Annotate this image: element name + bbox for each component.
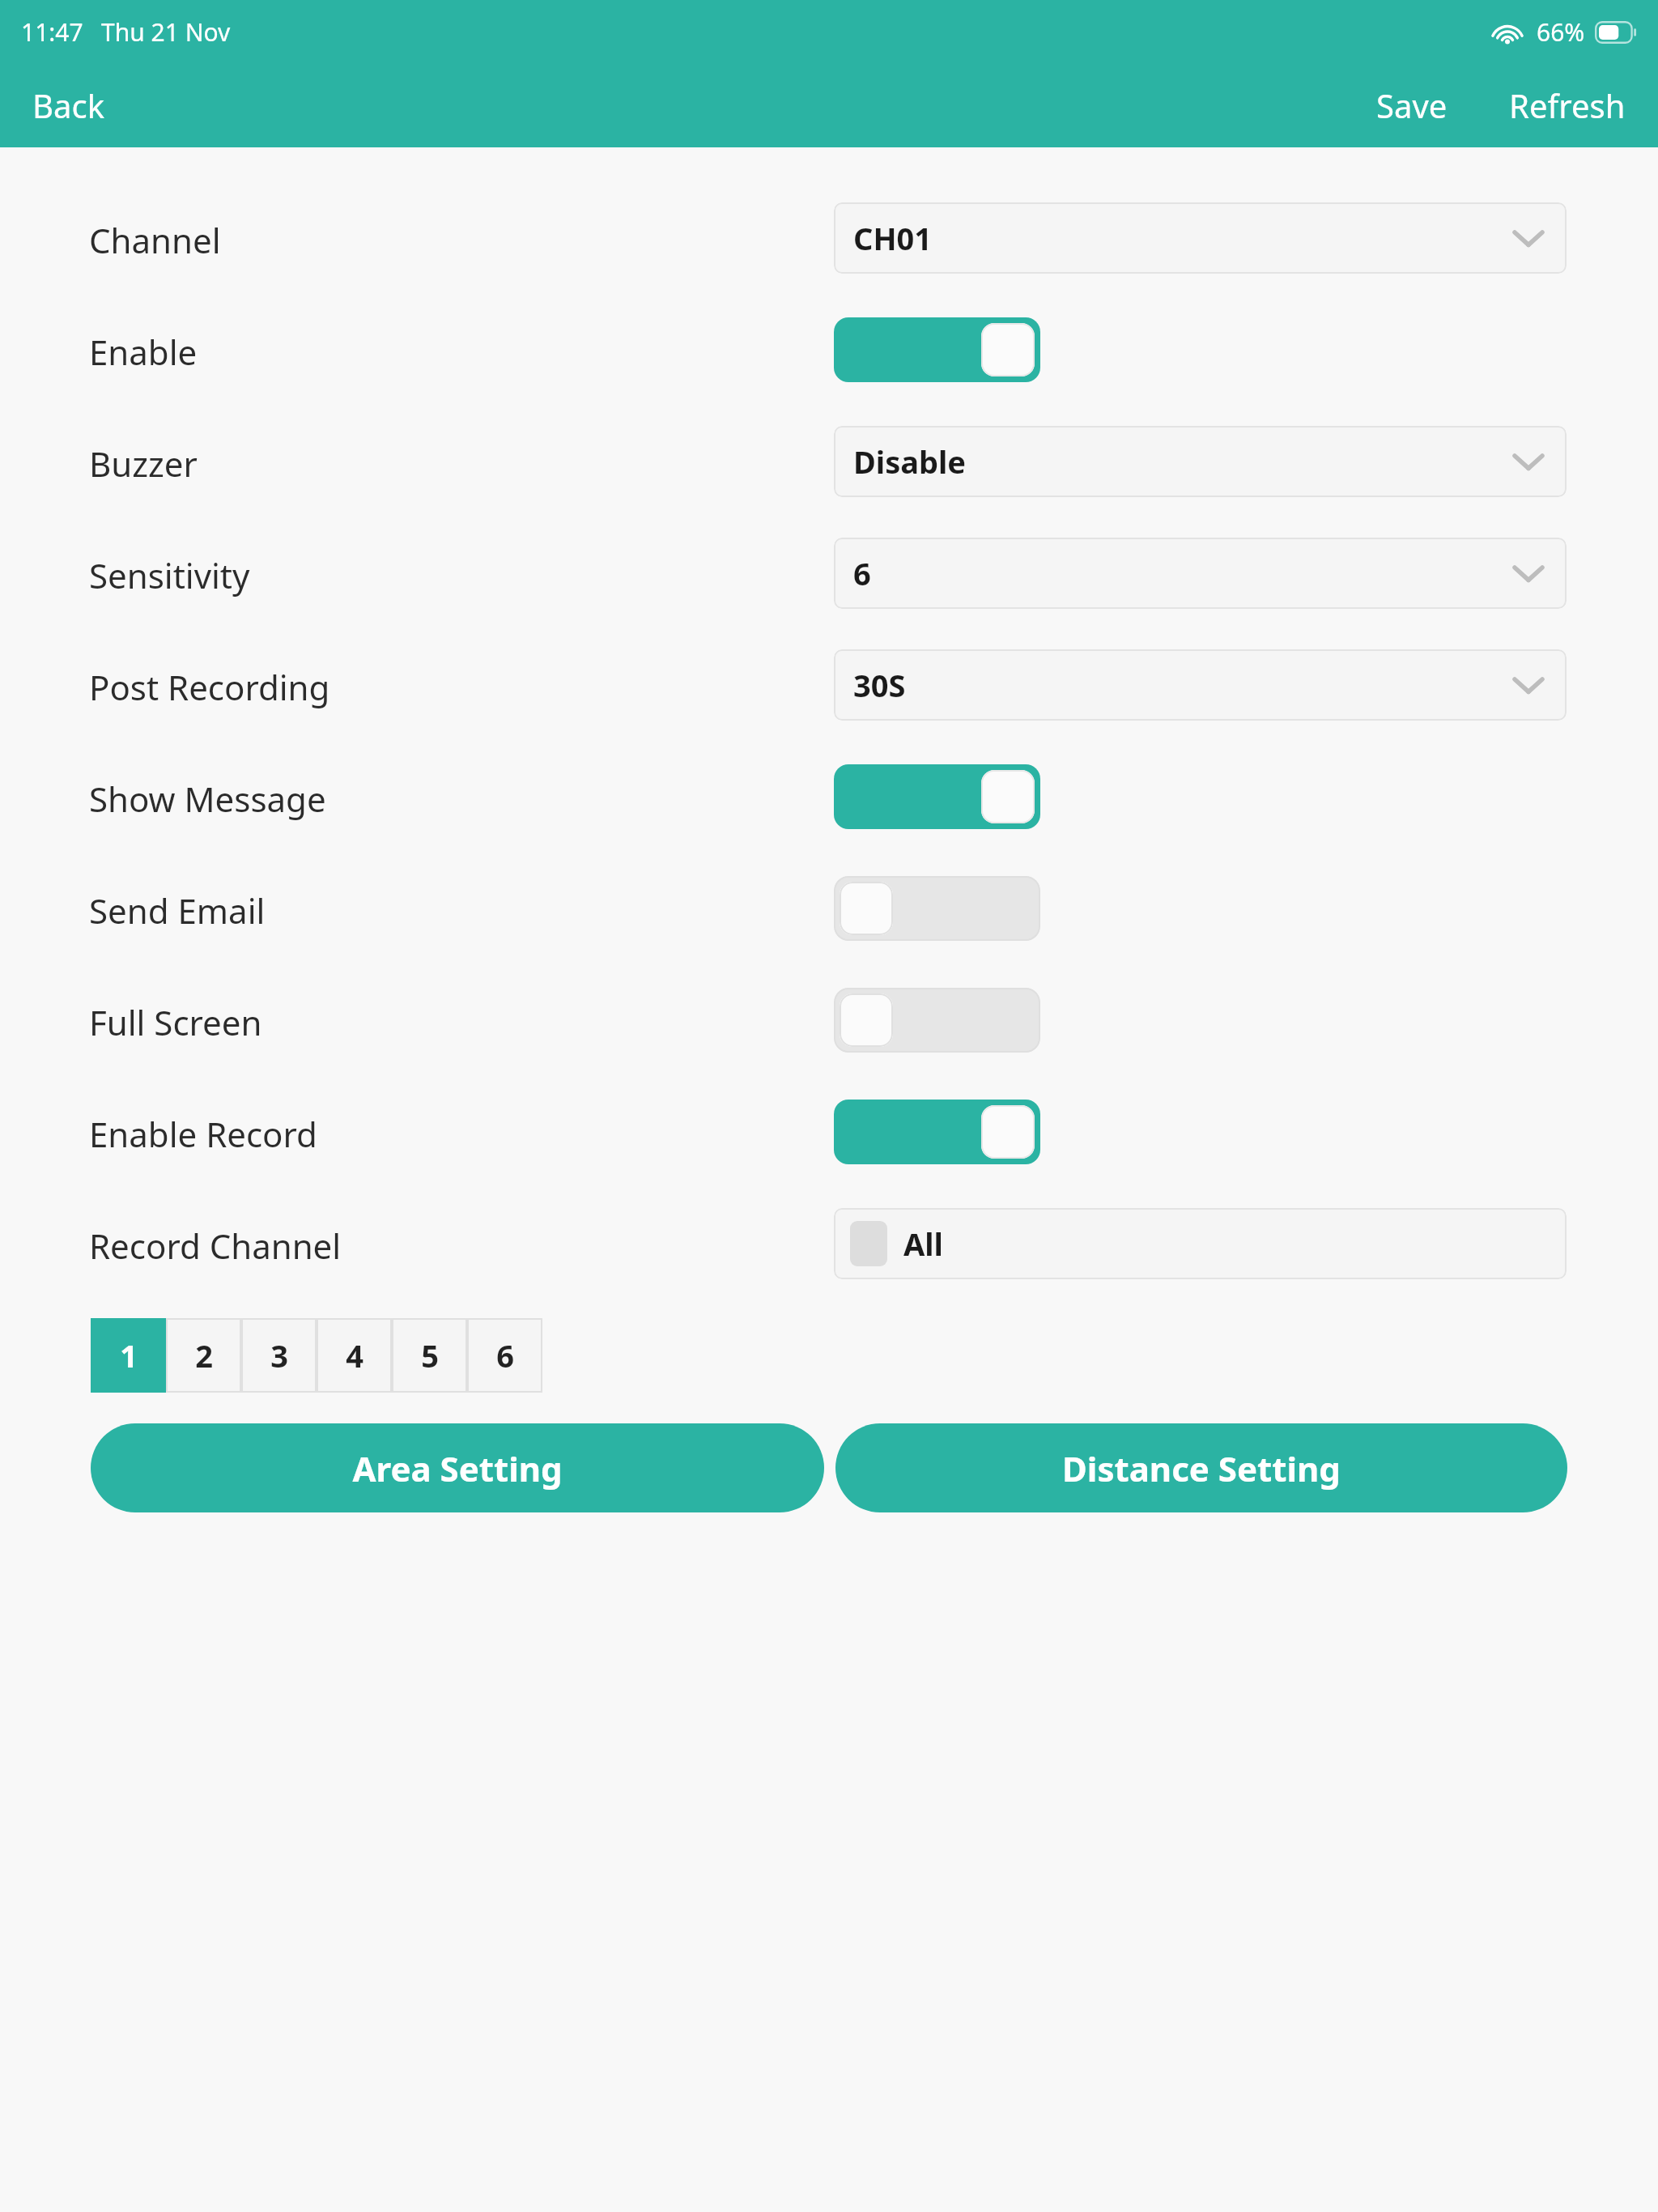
staticText: 5 — [421, 1334, 439, 1376]
button[interactable]: CH01 — [834, 202, 1567, 274]
button[interactable]: 2 — [166, 1318, 241, 1393]
button[interactable]: Distance Setting — [835, 1423, 1567, 1512]
staticText: Back — [32, 83, 104, 127]
staticText: Post Recording — [89, 664, 330, 710]
button[interactable]: Area Setting — [91, 1423, 824, 1512]
staticText: Distance Setting — [1062, 1445, 1341, 1491]
button[interactable]: 6 — [467, 1318, 542, 1393]
staticText: 3 — [270, 1334, 288, 1376]
button[interactable]: Full Screen off — [834, 988, 1040, 1053]
staticText: Refresh — [1509, 83, 1626, 127]
staticText: Enable — [89, 329, 198, 375]
staticText: Send Email — [89, 887, 266, 934]
button[interactable]: Show Message on — [834, 764, 1040, 829]
button[interactable]: Disable — [834, 426, 1567, 497]
staticText: All — [903, 1223, 943, 1265]
staticText: Show Message — [89, 776, 326, 822]
staticText: 4 — [346, 1334, 363, 1376]
staticText: 66% — [1537, 15, 1585, 49]
staticText: 6 — [853, 552, 871, 594]
button[interactable]: Send Email off — [834, 876, 1040, 941]
button[interactable]: Save — [1355, 72, 1469, 138]
button[interactable]: 5 — [392, 1318, 467, 1393]
button[interactable]: Enable on — [834, 317, 1040, 382]
staticText: Full Screen — [89, 999, 262, 1045]
button[interactable]: All — [834, 1208, 1567, 1279]
button[interactable]: 4 — [317, 1318, 392, 1393]
staticText: 30S — [853, 664, 906, 706]
button[interactable]: 6 — [834, 538, 1567, 609]
staticText: Channel — [89, 217, 221, 263]
staticText: Record Channel — [89, 1223, 342, 1269]
staticText: Sensitivity — [89, 552, 250, 598]
staticText: 6 — [496, 1334, 514, 1376]
staticText: Enable Record — [89, 1111, 317, 1157]
staticText: Save — [1376, 83, 1448, 127]
staticText: 1 — [120, 1334, 138, 1376]
button[interactable]: 1 — [91, 1318, 166, 1393]
button[interactable]: Back — [0, 72, 137, 138]
button[interactable]: Enable Record on — [834, 1100, 1040, 1164]
button[interactable]: Refresh — [1488, 72, 1658, 138]
staticText: Buzzer — [89, 440, 198, 487]
staticText: 11:47 — [21, 15, 83, 49]
staticText: Area Setting — [352, 1445, 563, 1491]
staticText: Disable — [853, 440, 967, 483]
button[interactable]: 30S — [834, 649, 1567, 721]
staticText: Thu 21 Nov — [101, 15, 231, 49]
button[interactable]: 3 — [241, 1318, 317, 1393]
staticText: 2 — [195, 1334, 213, 1376]
staticText: CH01 — [853, 217, 932, 259]
